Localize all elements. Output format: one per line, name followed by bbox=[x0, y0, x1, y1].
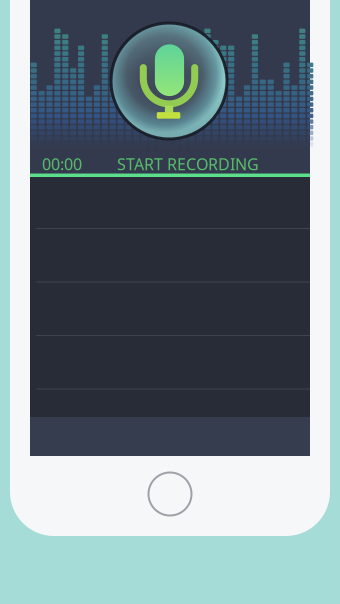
button[interactable] bbox=[30, 282, 310, 336]
button[interactable] bbox=[30, 175, 310, 229]
staticText: START RECORDING bbox=[117, 153, 259, 175]
button[interactable]: Start recording bbox=[111, 23, 227, 139]
staticText: 00:00 bbox=[42, 153, 82, 175]
button[interactable] bbox=[30, 389, 310, 443]
